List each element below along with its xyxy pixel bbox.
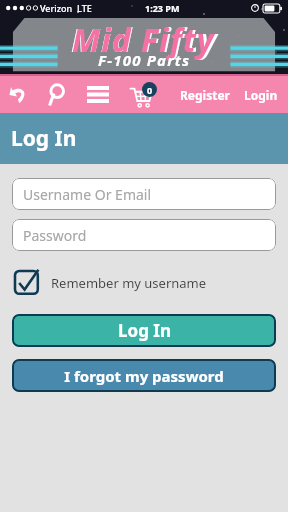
button[interactable]: Search [38,76,78,113]
staticText: Log In [118,319,171,342]
staticText: Verizon [40,2,73,14]
button[interactable]: Back [0,76,38,113]
staticText: I forgot my password [64,366,224,386]
button[interactable]: Cart, 0 items [118,76,164,113]
staticText: Mid Fifty [71,17,218,62]
staticText: Mid Fifty [72,18,215,62]
staticText: Register [180,87,230,103]
staticText: F-100 Parts [98,50,191,70]
button[interactable]: Password [12,219,276,251]
staticText: Remember my username [51,274,207,292]
staticText: Password [23,226,87,245]
button[interactable]: I forgot my password [12,359,276,392]
button[interactable]: Log In [12,314,276,347]
staticText: Log In [11,124,77,153]
staticText: 0 [147,84,153,96]
button[interactable]: Login [236,76,288,113]
button[interactable]: Register [174,76,236,113]
staticText: Username Or Email [23,185,152,204]
staticText: 1:23 PM [145,2,180,14]
staticText: LTE [77,2,92,14]
staticText: Login [244,87,278,103]
button[interactable]: Remember my username [12,266,276,300]
button[interactable]: Username Or Email [12,178,276,210]
button[interactable]: Menu [78,76,118,113]
